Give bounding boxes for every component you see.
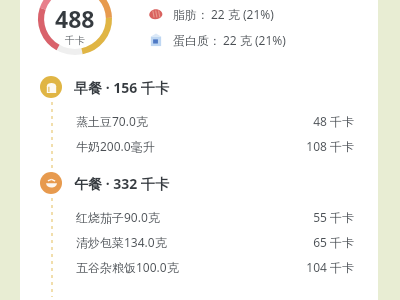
staticText: 488 <box>55 3 95 34</box>
staticText: 午餐 · 332 千卡 <box>74 174 169 193</box>
button[interactable]: 蛋白质： <box>148 32 400 48</box>
other: Breakfast <box>40 76 62 98</box>
staticText: 牛奶200.0毫升 <box>76 138 155 154</box>
staticText: 22 克 (21%) <box>211 6 274 22</box>
staticText: 红烧茄子90.0克 <box>76 209 160 225</box>
staticText: 55 千卡 <box>313 209 354 225</box>
staticText: 22 克 (21%) <box>223 32 286 48</box>
button[interactable]: 脂肪： <box>148 6 400 22</box>
staticText: 早餐 · 156 千卡 <box>74 78 169 97</box>
button[interactable]: 红烧茄子90.0克 <box>20 204 378 229</box>
staticText: 104 千卡 <box>306 259 354 275</box>
button[interactable]: 牛奶200.0毫升 <box>20 133 378 158</box>
staticText: 65 千卡 <box>313 234 354 250</box>
staticText: 千卡 <box>65 34 85 47</box>
button[interactable]: 五谷杂粮饭100.0克 <box>20 254 378 279</box>
staticText: 清炒包菜134.0克 <box>76 234 167 250</box>
other: Lunch <box>40 172 62 194</box>
staticText: 蛋白质： <box>173 33 221 48</box>
staticText: 48 千卡 <box>313 113 354 129</box>
staticText: 脂肪： <box>173 7 209 22</box>
button[interactable]: 蒸土豆70.0克 <box>20 108 378 133</box>
button[interactable]: Breakfast <box>20 76 378 98</box>
button[interactable]: 清炒包菜134.0克 <box>20 229 378 254</box>
staticText: 五谷杂粮饭100.0克 <box>76 259 179 275</box>
button[interactable]: Lunch <box>20 172 378 194</box>
staticText: 蒸土豆70.0克 <box>76 113 148 129</box>
staticText: 108 千卡 <box>306 138 354 154</box>
